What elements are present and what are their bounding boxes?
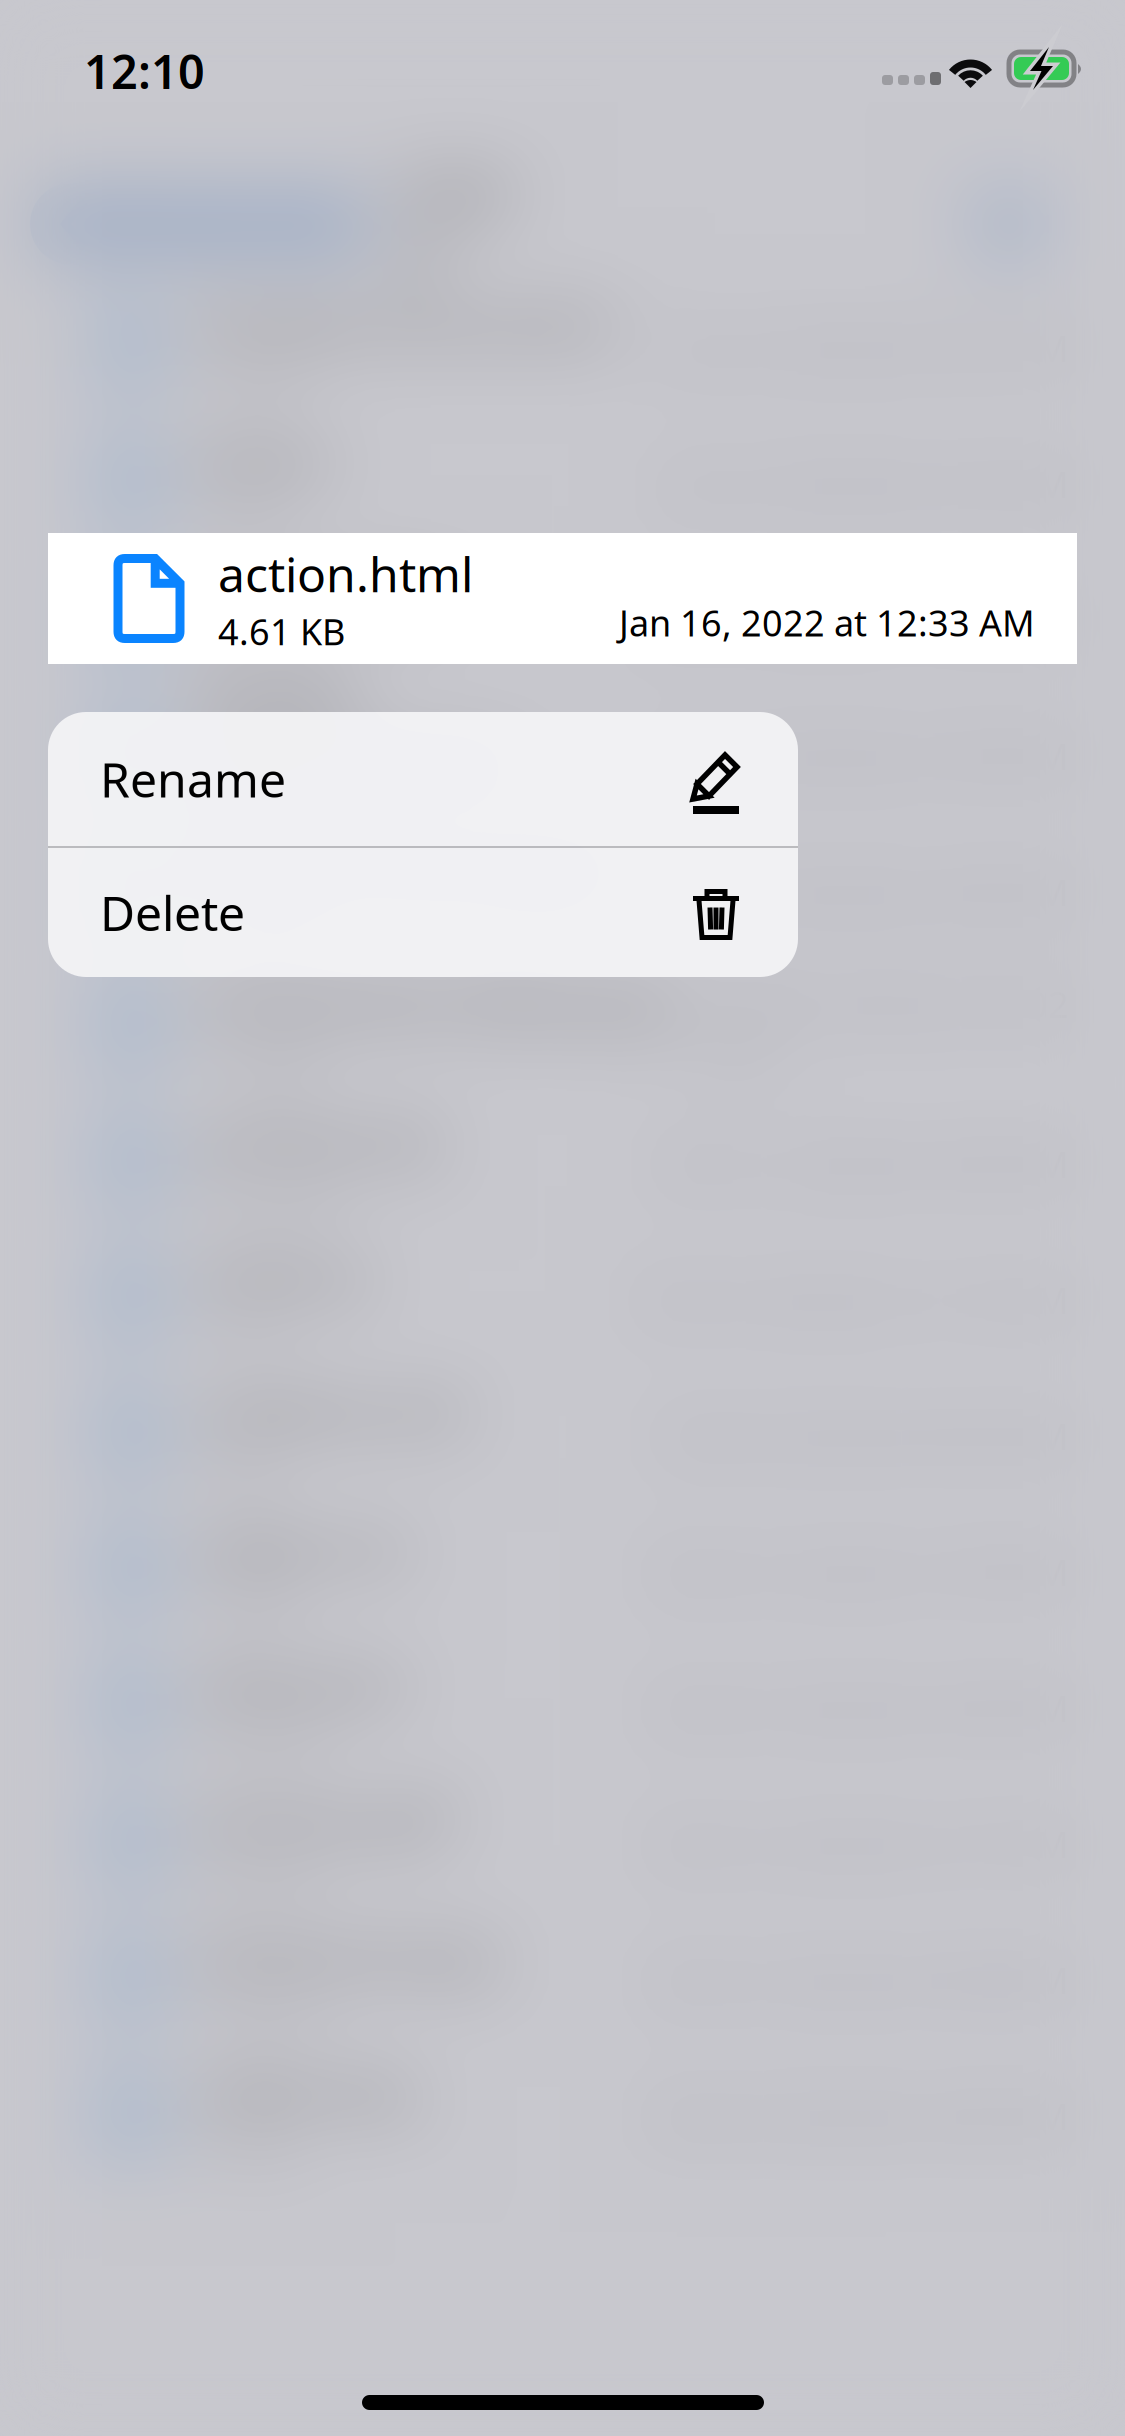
staticText: Jan 16, 2022 at 12:33 AM [653, 596, 1069, 644]
staticText: 88 KB [198, 797, 294, 845]
button[interactable]: action.html [48, 533, 1077, 664]
button[interactable]: Rename [48, 712, 798, 846]
staticText: Jan 16, 2022 at 12:33 AM [619, 599, 1035, 646]
staticText: Jan 18, 2022 at 7:45 PM [675, 732, 1069, 780]
staticText: 3 KB [198, 493, 273, 541]
staticText: action.html [218, 542, 473, 605]
staticText: 12:10 [84, 40, 205, 102]
staticText: 210 KB [198, 901, 315, 949]
staticText: action.html [198, 563, 453, 626]
staticText: Screenshot 2022.png [198, 971, 672, 1034]
staticText: Feb 02, 2022 at 2:20 PM [666, 868, 1069, 916]
staticText: Rename [100, 747, 286, 811]
staticText: 4.61 KB [198, 629, 325, 677]
staticText: Delete [100, 881, 245, 944]
staticText: 4.61 KB [218, 607, 345, 655]
button[interactable]: Delete [48, 848, 798, 977]
staticText: Budget 2022.numbers [198, 667, 524, 794]
staticText: Project Plan.pages [198, 835, 614, 898]
